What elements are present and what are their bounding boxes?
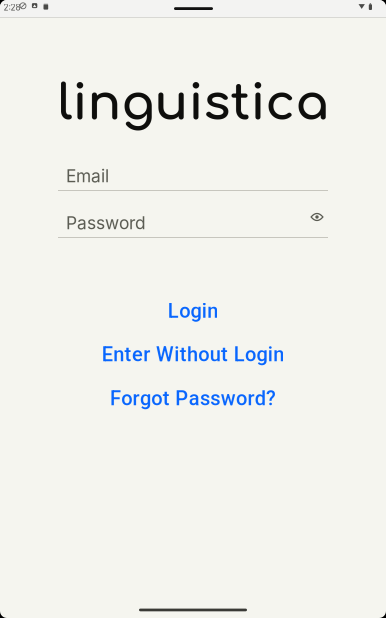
staticText: Enter Without Login [102,343,284,366]
staticText: Password [66,212,146,233]
staticText: Login [168,299,218,323]
staticText: Email [66,165,109,186]
button[interactable]: Show password [305,207,329,227]
button[interactable]: Login [0,298,386,324]
staticText: 2:28 [3,3,20,13]
staticText: linguistica [57,76,328,131]
button[interactable]: Forgot Password? [0,385,386,411]
button[interactable]: Enter Without Login [0,341,386,367]
staticText: Forgot Password? [110,387,276,410]
